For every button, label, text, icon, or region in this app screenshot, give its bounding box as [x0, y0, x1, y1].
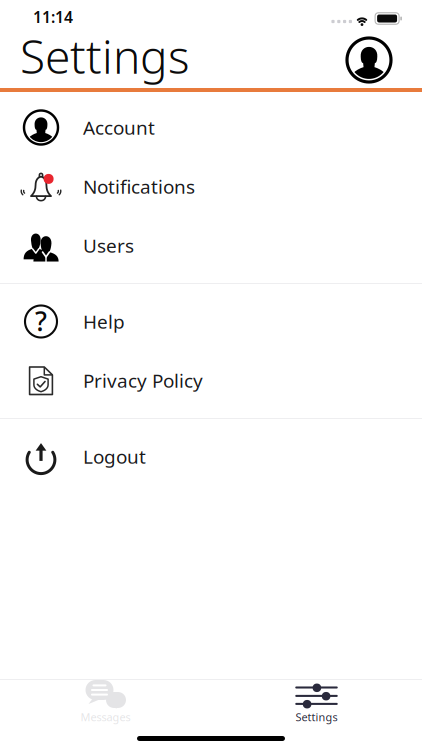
button[interactable]: Profile [347, 38, 391, 82]
staticText: Messages [80, 710, 130, 724]
staticText: Notifications [83, 174, 195, 199]
staticText: Help [83, 309, 125, 334]
staticText: Account [83, 115, 155, 140]
staticText: Settings [20, 25, 190, 87]
staticText: 11:14 [33, 6, 73, 28]
button[interactable]: Privacy Policy [0, 351, 422, 410]
button[interactable]: Users [0, 216, 422, 275]
staticText: ? [35, 303, 47, 339]
button[interactable]: Settings [211, 680, 422, 726]
staticText: Privacy Policy [83, 368, 203, 393]
button[interactable]: Notifications [0, 157, 422, 216]
staticText: Logout [83, 444, 146, 469]
staticText: Settings [295, 710, 337, 724]
button[interactable]: Messages [0, 680, 211, 726]
button[interactable]: Logout [0, 427, 422, 486]
button[interactable]: Account [0, 98, 422, 157]
button[interactable]: ? [0, 292, 422, 351]
staticText: Users [83, 233, 134, 258]
